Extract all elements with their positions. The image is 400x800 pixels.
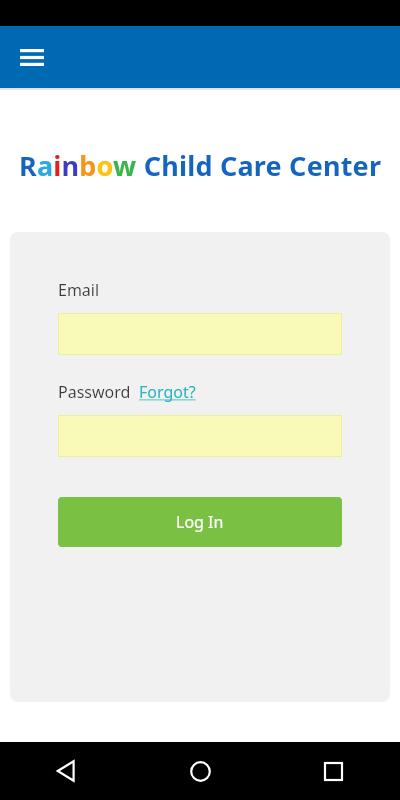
button[interactable]: Forgot? xyxy=(139,381,196,403)
staticText: Log In xyxy=(176,511,224,533)
staticText: Email xyxy=(58,279,100,301)
staticText: Forgot? xyxy=(139,381,196,403)
button[interactable]: Home xyxy=(134,742,267,800)
button[interactable]: Open navigation menu xyxy=(14,39,50,75)
button[interactable]: Back xyxy=(0,742,134,800)
staticText: Password xyxy=(58,381,131,403)
staticText: Rainbow Child Care Center xyxy=(19,147,382,184)
button[interactable]: Recent apps xyxy=(267,742,400,800)
button[interactable]: Log In xyxy=(58,497,342,547)
